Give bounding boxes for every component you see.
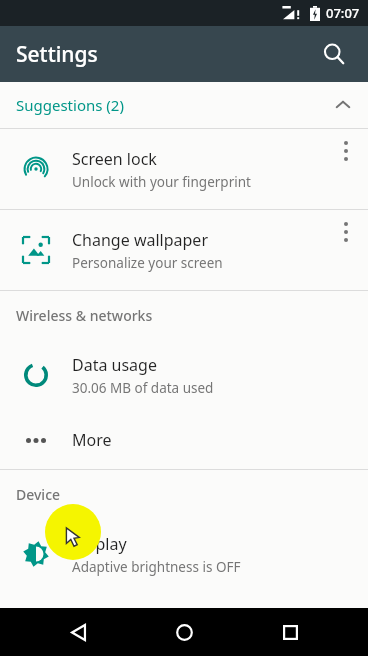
button[interactable]: Display	[0, 518, 368, 590]
staticText: Adaptive brightness is OFF	[72, 558, 241, 576]
staticText: Screen lock	[72, 148, 157, 170]
staticText: 30.06 MB of data used	[72, 379, 214, 397]
button[interactable]: Back	[50, 608, 106, 656]
button[interactable]: Suggestions (2)	[0, 82, 368, 128]
staticText: Data usage	[72, 354, 157, 376]
staticText: Device	[16, 485, 61, 504]
staticText: 07:07	[326, 4, 360, 22]
staticText: Settings	[16, 40, 98, 69]
button[interactable]: More	[0, 411, 368, 469]
staticText: Unlock with your fingerprint	[72, 173, 251, 191]
button[interactable]: Home	[156, 608, 212, 656]
staticText: Change wallpaper	[72, 229, 208, 251]
staticText: More	[72, 429, 112, 451]
staticText: Wireless & networks	[16, 306, 153, 325]
button[interactable]: Screen lock	[0, 129, 368, 209]
button[interactable]: Change wallpaper	[0, 210, 368, 290]
button[interactable]: More options	[324, 129, 368, 209]
button[interactable]: Data usage	[0, 339, 368, 411]
button[interactable]: More options	[324, 210, 368, 290]
staticText: Personalize your screen	[72, 254, 223, 272]
staticText: Display	[72, 533, 127, 555]
staticText: Suggestions (2)	[16, 95, 124, 115]
button[interactable]: Search	[310, 30, 358, 78]
button[interactable]: Recent apps	[262, 608, 318, 656]
